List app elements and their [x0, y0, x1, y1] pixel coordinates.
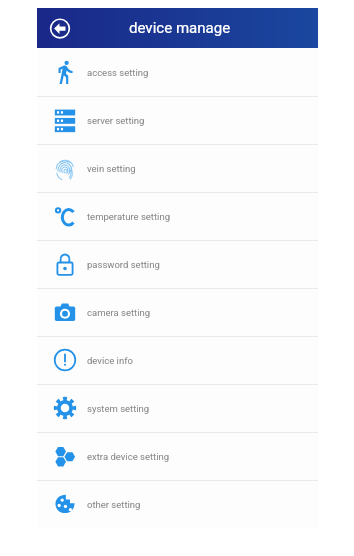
- button[interactable]: other setting: [37, 480, 318, 528]
- button[interactable]: temperature setting: [37, 192, 318, 240]
- button[interactable]: server setting: [37, 96, 318, 144]
- button[interactable]: extra device setting: [37, 432, 318, 480]
- staticText: camera setting: [87, 307, 151, 318]
- staticText: extra device setting: [87, 451, 170, 462]
- staticText: device info: [87, 355, 133, 366]
- staticText: device manage: [129, 19, 231, 37]
- button[interactable]: password setting: [37, 240, 318, 288]
- staticText: password setting: [87, 259, 160, 270]
- button[interactable]: camera setting: [37, 288, 318, 336]
- staticText: access setting: [87, 67, 149, 78]
- button[interactable]: system setting: [37, 384, 318, 432]
- staticText: vein setting: [87, 163, 136, 174]
- button[interactable]: Back: [48, 16, 72, 40]
- staticText: other setting: [87, 499, 141, 510]
- button[interactable]: device info: [37, 336, 318, 384]
- staticText: system setting: [87, 403, 150, 414]
- button[interactable]: vein setting: [37, 144, 318, 192]
- staticText: server setting: [87, 115, 145, 126]
- button[interactable]: access setting: [37, 48, 318, 96]
- staticText: temperature setting: [87, 211, 170, 222]
